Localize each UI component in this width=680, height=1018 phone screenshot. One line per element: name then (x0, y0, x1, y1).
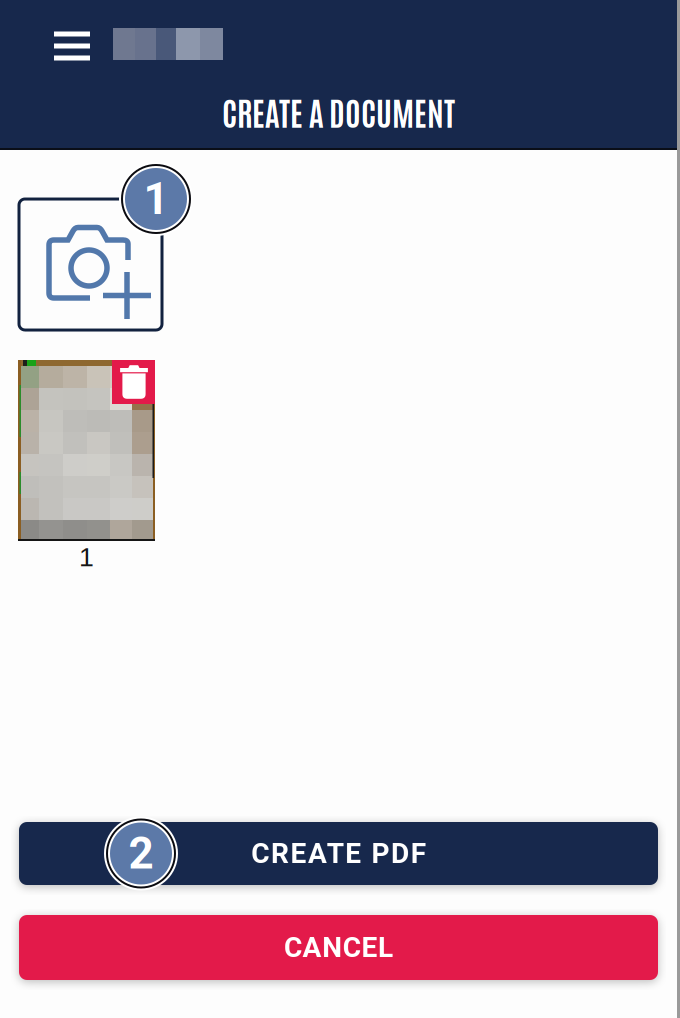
staticText: 1 (143, 173, 168, 225)
staticText: CREATE PDF (251, 837, 426, 870)
button[interactable]: CANCEL (19, 915, 658, 980)
button[interactable]: Menu (42, 18, 102, 74)
button[interactable]: CREATE PDF (19, 822, 658, 885)
staticText: CREATE A DOCUMENT (222, 91, 455, 132)
button[interactable]: Delete page (112, 360, 155, 404)
button[interactable]: Add photo (19, 199, 162, 330)
staticText: CANCEL (284, 931, 393, 964)
staticText: 2 (128, 828, 153, 879)
staticText: 1 (79, 542, 94, 572)
